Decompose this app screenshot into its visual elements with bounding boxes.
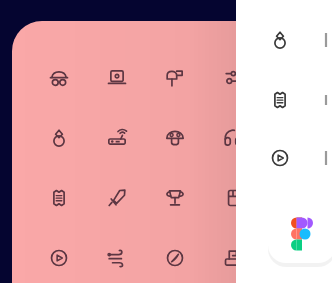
- button[interactable]: [12, 21, 332, 283]
- button[interactable]: [236, 0, 332, 283]
- button[interactable]: Open in Figma: [268, 205, 332, 263]
